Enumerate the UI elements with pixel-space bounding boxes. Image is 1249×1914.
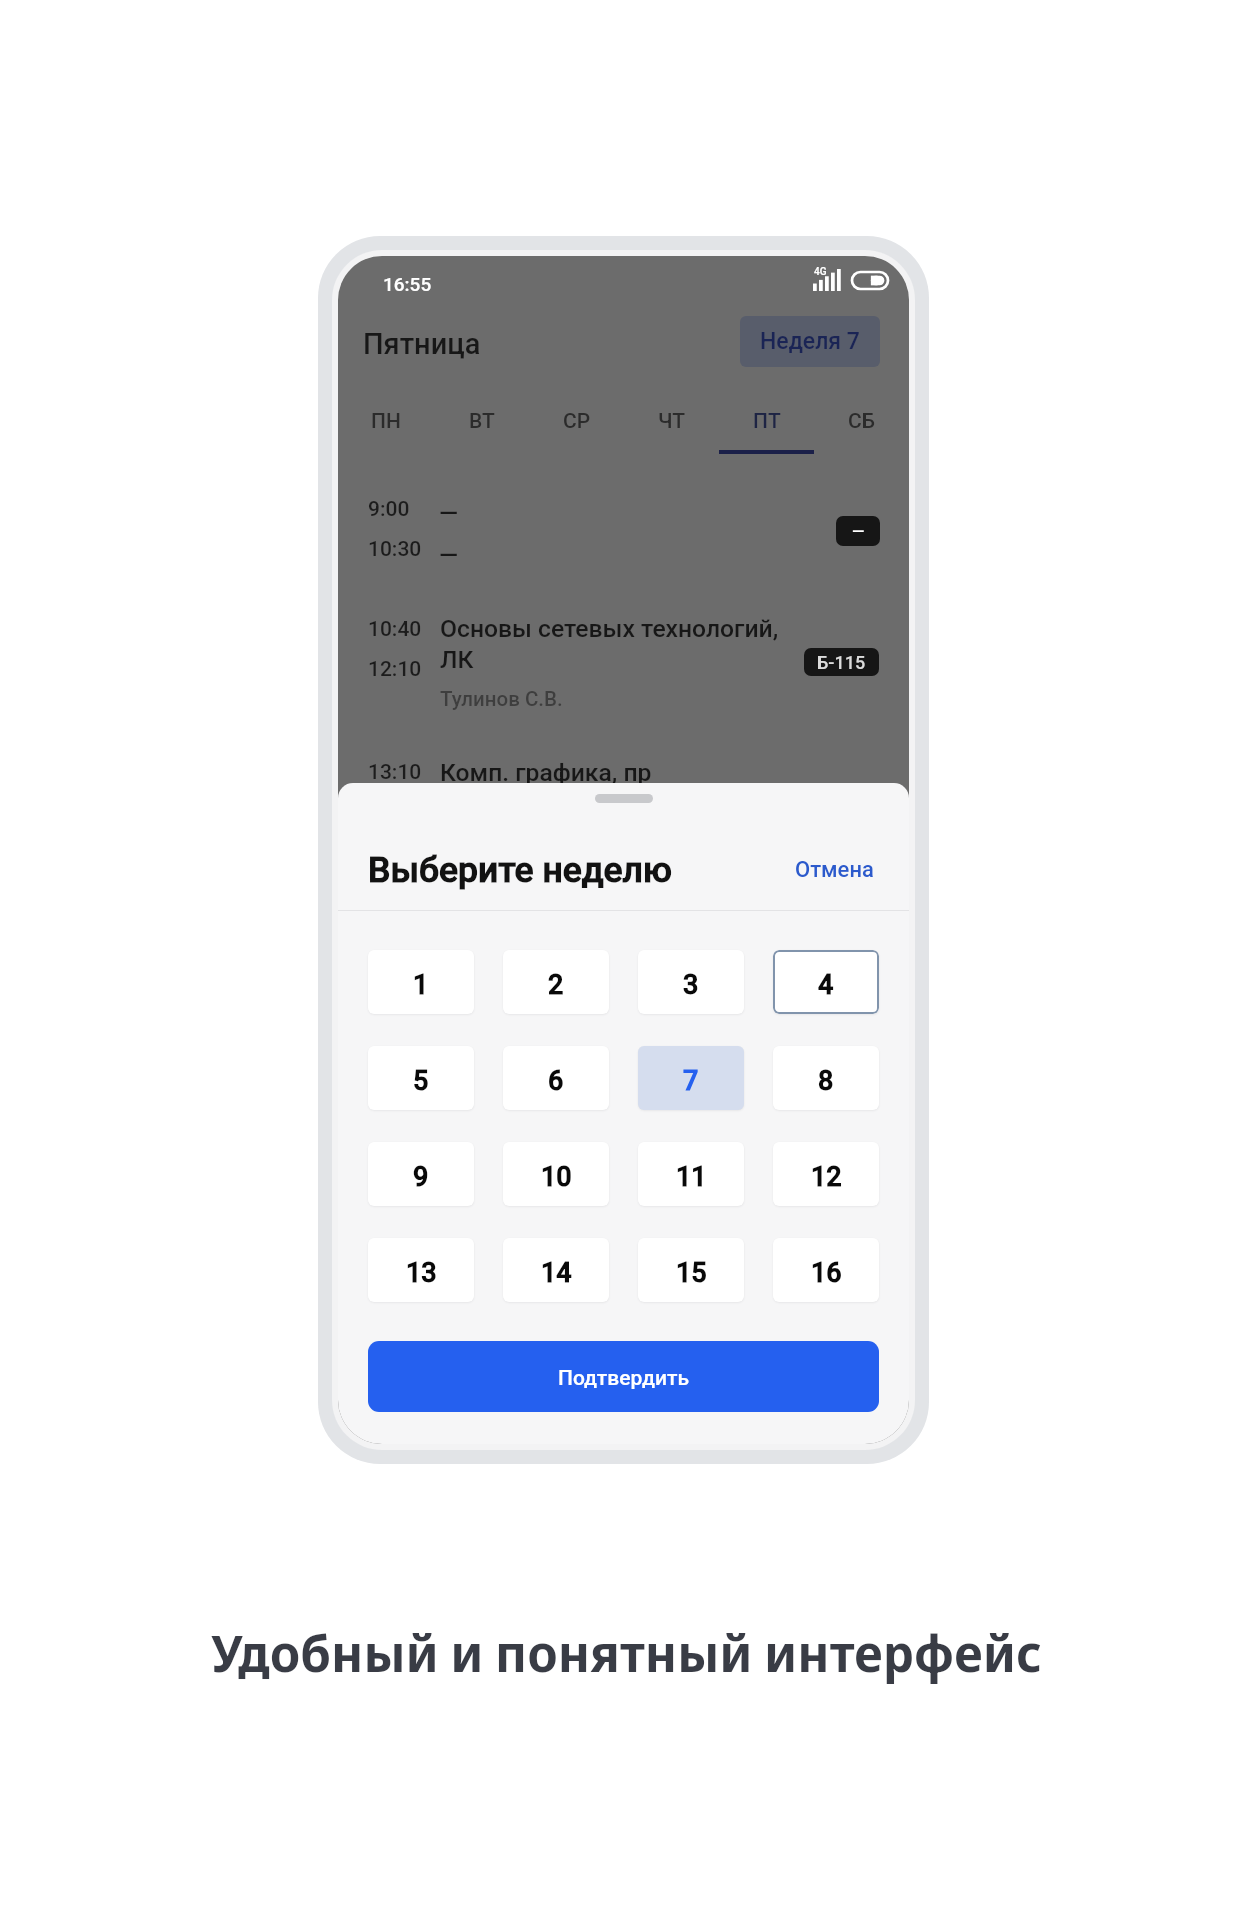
button[interactable]: Б-115 (804, 648, 879, 676)
staticText: 10 (541, 1161, 572, 1193)
button[interactable]: Подтвердить (368, 1341, 879, 1412)
staticText: Основы сетевых технологий, (440, 614, 779, 643)
button[interactable]: 3 (638, 950, 744, 1014)
staticText: ЧТ (658, 409, 685, 434)
staticText: 6 (548, 1065, 564, 1097)
staticText: — (852, 522, 865, 541)
button[interactable]: ВТ (434, 381, 529, 454)
staticText: 2 (548, 969, 564, 1001)
staticText: 4 (818, 969, 834, 1001)
button[interactable]: СР (529, 381, 624, 454)
staticText: Тулинов С.В. (440, 687, 563, 711)
staticText: 9 (413, 1161, 429, 1193)
staticText: 1 (413, 969, 429, 1001)
staticText: ЛК (440, 645, 474, 674)
button[interactable]: Отмена (790, 852, 879, 888)
staticText: ПТ (753, 409, 781, 434)
other: Drag handle (595, 794, 653, 803)
staticText: 16 (811, 1257, 842, 1289)
button[interactable]: ПН (338, 381, 434, 454)
staticText: Отмена (795, 857, 874, 883)
staticText: 11 (676, 1161, 707, 1193)
button[interactable]: 14 (503, 1238, 609, 1302)
staticText: Удобный и понятный интерфейс (2, 1619, 1249, 1687)
staticText: Комп. графика, пр (440, 758, 652, 787)
button[interactable]: ПТ (719, 381, 814, 454)
staticText: 10:40 (368, 617, 422, 642)
staticText: ПН (371, 409, 401, 434)
staticText: 13:10 (368, 760, 422, 785)
button[interactable]: 8 (773, 1046, 879, 1110)
staticText: Подтвердить (558, 1366, 690, 1391)
staticText: Выберите неделю (368, 849, 672, 891)
button[interactable]: 5 (368, 1046, 474, 1110)
button[interactable]: 9 (368, 1142, 474, 1206)
staticText: — (439, 540, 459, 569)
staticText: СР (563, 409, 591, 434)
staticText: 14 (541, 1257, 572, 1289)
staticText: Б-115 (817, 652, 866, 673)
staticText: — (439, 498, 459, 527)
button[interactable]: 11 (638, 1142, 744, 1206)
button[interactable]: 10 (503, 1142, 609, 1206)
staticText: 13 (406, 1257, 437, 1289)
staticText: 3 (683, 969, 699, 1001)
button[interactable]: 1 (368, 950, 474, 1014)
staticText: 4G (814, 266, 827, 278)
staticText: СБ (848, 409, 875, 434)
staticText: 7 (683, 1065, 699, 1097)
button[interactable]: 4 (773, 950, 879, 1014)
button[interactable]: Неделя 7 (740, 316, 880, 367)
staticText: 5 (413, 1065, 429, 1097)
button[interactable]: 6 (503, 1046, 609, 1110)
staticText: 8 (818, 1065, 834, 1097)
button[interactable]: 2 (503, 950, 609, 1014)
staticText: 12:10 (368, 657, 422, 682)
staticText: Пятница (363, 327, 481, 361)
button[interactable]: 16 (773, 1238, 879, 1302)
staticText: ВТ (469, 409, 495, 434)
button[interactable]: Free slot (836, 516, 880, 546)
staticText: 15 (676, 1257, 707, 1289)
button[interactable]: ЧТ (624, 381, 719, 454)
staticText: Неделя 7 (760, 328, 860, 355)
button[interactable]: СБ (814, 381, 909, 454)
staticText: 9:00 (368, 497, 410, 522)
button[interactable]: 7 (638, 1046, 744, 1110)
button[interactable]: 15 (638, 1238, 744, 1302)
staticText: 12 (811, 1161, 842, 1193)
button[interactable]: 12 (773, 1142, 879, 1206)
staticText: 16:55 (383, 273, 432, 295)
staticText: 10:30 (368, 537, 422, 562)
button[interactable]: 13 (368, 1238, 474, 1302)
